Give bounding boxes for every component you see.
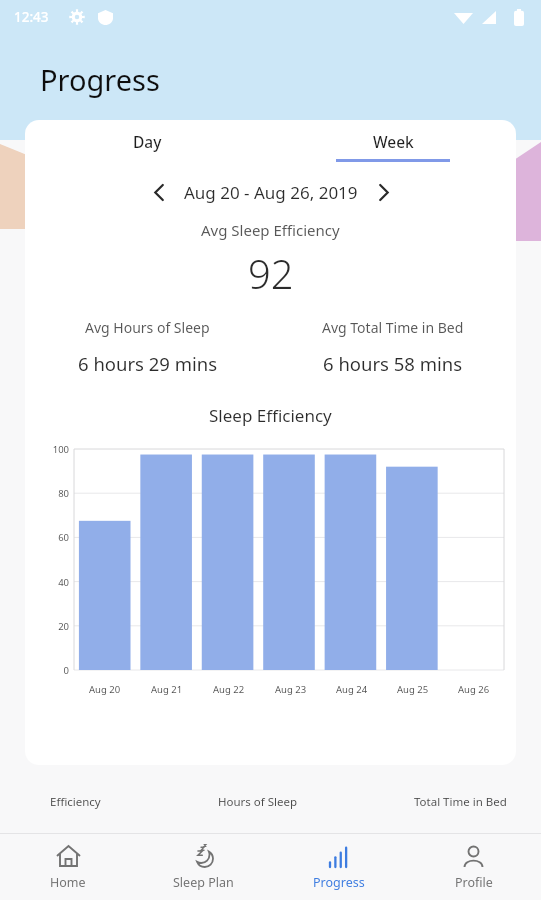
staticText: Aug 25 [397,683,429,696]
staticText: 60 [41,531,69,544]
staticText: Aug 26 [458,683,490,696]
staticText: Week [373,131,414,152]
staticText: Progress [313,874,365,891]
button[interactable]: Efficiency [50,794,101,810]
staticText: Aug 23 [275,683,307,696]
staticText: Progress [40,60,160,99]
button[interactable]: Previous week [142,175,176,209]
staticText: Aug 20 - Aug 26, 2019 [184,181,358,204]
staticText: 100 [41,443,69,456]
staticText: 6 hours 58 mins [323,351,463,376]
staticText: Aug 21 [151,683,183,696]
staticText: 40 [41,576,69,589]
staticText: Profile [455,874,493,891]
staticText: Avg Total Time in Bed [322,318,464,337]
staticText: Sleep Efficiency [209,404,332,427]
staticText: 6 hours 29 mins [78,351,218,376]
button[interactable]: Profile [406,834,541,900]
button[interactable]: Hours of Sleep [218,794,298,810]
staticText: 92 [248,246,294,300]
staticText: Sleep Plan [173,874,234,891]
staticText: 12:43 [14,8,49,26]
button[interactable]: Week [270,120,516,162]
button[interactable]: Day [25,120,270,162]
staticText: Avg Hours of Sleep [85,318,210,337]
staticText: 0 [41,664,69,677]
staticText: Day [133,131,162,152]
button[interactable]: Next week [366,175,400,209]
staticText: 80 [41,487,69,500]
staticText: 20 [41,620,69,633]
button[interactable]: Sleep Plan [136,834,271,900]
staticText: Avg Sleep Efficiency [201,220,340,240]
button[interactable]: Total Time in Bed [414,794,507,810]
staticText: Aug 20 [89,683,121,696]
button[interactable]: Progress [271,834,406,900]
staticText: Home [50,874,86,891]
button[interactable]: Home [0,834,136,900]
staticText: Aug 24 [336,683,368,696]
staticText: Aug 22 [213,683,245,696]
